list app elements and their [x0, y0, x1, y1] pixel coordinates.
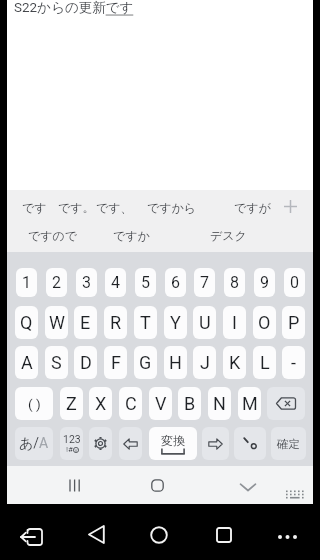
- button[interactable]: H: [164, 346, 187, 379]
- staticText: C: [125, 393, 137, 414]
- button[interactable]: S: [45, 346, 68, 379]
- staticText: K: [229, 352, 241, 373]
- staticText: です: [22, 200, 47, 215]
- button[interactable]: [216, 527, 232, 543]
- staticText: A: [21, 352, 33, 373]
- staticText: 7: [200, 273, 209, 292]
- button[interactable]: [88, 525, 105, 544]
- button[interactable]: M: [238, 387, 261, 420]
- button[interactable]: ( ): [15, 387, 53, 420]
- button[interactable]: [285, 490, 304, 500]
- button[interactable]: 1: [16, 268, 37, 297]
- button[interactable]: I: [223, 306, 246, 339]
- button[interactable]: [239, 483, 257, 492]
- staticText: U: [199, 312, 211, 333]
- button[interactable]: C: [119, 387, 142, 420]
- staticText: L: [260, 352, 270, 373]
- button[interactable]: Z: [60, 387, 83, 420]
- button[interactable]: 8: [224, 268, 245, 297]
- button[interactable]: X: [89, 387, 112, 420]
- button[interactable]: ですか: [109, 226, 153, 244]
- staticText: -: [291, 352, 296, 373]
- button[interactable]: D: [74, 346, 97, 379]
- button[interactable]: 3: [76, 268, 97, 297]
- staticText: 3: [82, 273, 91, 292]
- staticText: 6: [171, 273, 180, 292]
- staticText: 123: [63, 433, 81, 445]
- button[interactable]: P: [282, 306, 305, 339]
- staticText: S22からの更新です: [14, 0, 134, 16]
- button[interactable]: N: [208, 387, 231, 420]
- staticText: 5: [141, 273, 150, 292]
- staticText: ですか: [113, 228, 150, 243]
- button[interactable]: です、: [91, 198, 137, 216]
- staticText: N: [213, 393, 226, 414]
- staticText: 変換: [161, 433, 185, 448]
- staticText: 0: [290, 273, 299, 292]
- button[interactable]: あ/A: [15, 427, 53, 460]
- staticText: 8: [230, 273, 239, 292]
- button[interactable]: 6: [165, 268, 186, 297]
- button[interactable]: [234, 427, 266, 460]
- button[interactable]: デスク: [206, 226, 250, 244]
- staticText: W: [49, 312, 65, 333]
- button[interactable]: です。: [53, 198, 99, 216]
- button[interactable]: 7: [194, 268, 215, 297]
- button[interactable]: R: [104, 306, 127, 339]
- button[interactable]: ですから: [145, 198, 199, 216]
- button[interactable]: A: [15, 346, 38, 379]
- button[interactable]: [202, 427, 229, 460]
- staticText: B: [184, 393, 196, 414]
- button[interactable]: 2: [46, 268, 67, 297]
- button[interactable]: F: [104, 346, 127, 379]
- staticText: デスク: [210, 228, 247, 243]
- button[interactable]: V: [149, 387, 172, 420]
- button[interactable]: Q: [15, 306, 38, 339]
- button[interactable]: J: [193, 346, 216, 379]
- staticText: S: [51, 352, 62, 373]
- button[interactable]: [267, 387, 305, 420]
- button[interactable]: ですが: [230, 198, 274, 216]
- button[interactable]: 123: [60, 427, 83, 460]
- button[interactable]: [151, 479, 164, 492]
- staticText: D: [80, 352, 92, 373]
- button[interactable]: E: [74, 306, 97, 339]
- staticText: 確定: [277, 437, 300, 451]
- button[interactable]: 変換: [149, 427, 197, 460]
- button[interactable]: [283, 199, 298, 214]
- button[interactable]: 9: [254, 268, 275, 297]
- button[interactable]: [119, 427, 142, 460]
- button[interactable]: です: [14, 198, 54, 216]
- button[interactable]: ですので: [25, 226, 81, 244]
- staticText: 2: [52, 273, 61, 292]
- button[interactable]: 4: [105, 268, 126, 297]
- button[interactable]: [276, 533, 300, 541]
- staticText: I: [232, 312, 237, 333]
- button[interactable]: [150, 526, 168, 544]
- button[interactable]: T: [134, 306, 157, 339]
- button[interactable]: B: [178, 387, 201, 420]
- button[interactable]: -: [282, 346, 305, 379]
- staticText: ですが: [234, 200, 271, 215]
- button[interactable]: W: [45, 306, 68, 339]
- button[interactable]: K: [223, 346, 246, 379]
- staticText: J: [200, 352, 210, 373]
- button[interactable]: [19, 528, 43, 546]
- button[interactable]: [89, 427, 112, 460]
- button[interactable]: 0: [284, 268, 305, 297]
- button[interactable]: U: [193, 306, 216, 339]
- button[interactable]: [68, 479, 83, 492]
- staticText: ですから: [147, 200, 197, 215]
- staticText: です、: [96, 200, 133, 215]
- button[interactable]: 確定: [271, 427, 306, 460]
- button[interactable]: Y: [164, 306, 187, 339]
- button[interactable]: L: [253, 346, 276, 379]
- staticText: F: [111, 352, 121, 373]
- staticText: ( ): [28, 396, 41, 412]
- staticText: 4: [111, 273, 120, 292]
- button[interactable]: G: [134, 346, 157, 379]
- staticText: V: [155, 393, 167, 414]
- button[interactable]: O: [253, 306, 276, 339]
- staticText: ですので: [28, 228, 78, 243]
- button[interactable]: 5: [135, 268, 156, 297]
